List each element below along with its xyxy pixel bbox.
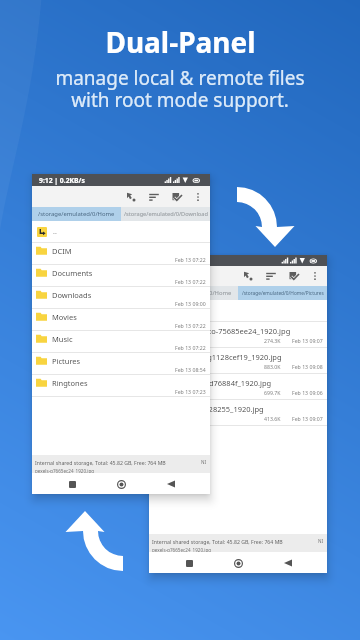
button[interactable]: Sort <box>263 268 279 284</box>
button[interactable]: /storage/emulated/0/Home/Pictures <box>238 286 327 300</box>
staticText: Ringtones <box>52 378 88 388</box>
staticText: Feb 13 09:07 <box>292 415 323 422</box>
button[interactable]: /storage/emulated/0/Home <box>32 207 121 221</box>
staticText: Documents <box>52 268 93 278</box>
button[interactable]: Paste <box>123 189 139 205</box>
staticText: Feb 13 07:22 <box>175 278 206 285</box>
button[interactable]: DCIM <box>32 243 210 265</box>
button[interactable]: Ringtones <box>32 375 210 397</box>
staticText: Feb 13 07:22 <box>175 322 206 329</box>
button[interactable]: Downloads <box>32 287 210 309</box>
staticText: Movies <box>52 312 77 322</box>
staticText: 413.6K <box>264 415 281 422</box>
button[interactable]: /storage/emulated/0/Home <box>149 286 238 300</box>
staticText: 699.7K <box>264 389 281 396</box>
button[interactable]: pexels-photo-75685ee24_1920.jpg <box>149 322 327 348</box>
staticText: Dual-Panel <box>105 23 256 61</box>
staticText: pexels-g7665ec24_1920.jpg <box>35 468 95 473</box>
staticText: NI <box>201 459 207 465</box>
button[interactable]: Select all <box>286 268 302 284</box>
staticText: Downloads <box>52 290 92 300</box>
button[interactable]: /storage/emulated/0/Download <box>121 207 210 221</box>
button[interactable]: Select all <box>169 189 185 205</box>
staticText: 883.0K <box>264 363 281 370</box>
staticText: manage local & remote files with root mo… <box>55 65 305 113</box>
button[interactable]: Home <box>228 553 248 573</box>
staticText: /storage/emulated/0/Download <box>124 210 208 218</box>
staticText: Feb 13 09:06 <box>292 389 323 396</box>
button[interactable]: wallpaper-g1128cef19_1920.jpg <box>149 348 327 374</box>
staticText: Pictures <box>52 356 81 366</box>
staticText: nature-ga2d76884f_1920.jpg <box>170 378 272 388</box>
staticText: wallpaper-g1128cef19_1920.jpg <box>170 352 282 362</box>
staticText: DCIM <box>52 246 72 256</box>
staticText: .. <box>170 306 174 316</box>
button[interactable]: bird-g2d4128255_1920.jpg <box>149 400 327 426</box>
button[interactable]: Recent apps <box>179 553 199 573</box>
button[interactable]: More options <box>307 268 323 284</box>
staticText: Feb 13 09:07 <box>292 337 323 344</box>
staticText: Feb 13 08:54 <box>175 366 206 373</box>
staticText: /storage/emulated/0/Home <box>155 289 232 297</box>
button[interactable]: Sort <box>146 189 162 205</box>
staticText: Feb 13 09:08 <box>292 363 323 370</box>
staticText: bird-g2d4128255_1920.jpg <box>170 404 264 414</box>
button[interactable]: Paste <box>240 268 256 284</box>
button[interactable]: Back <box>278 553 298 573</box>
staticText: /storage/emulated/0/Home/Pictures <box>242 290 324 297</box>
button[interactable]: Documents <box>32 265 210 287</box>
staticText: Feb 13 07:22 <box>175 256 206 263</box>
button[interactable]: .. <box>32 221 210 243</box>
staticText: pexels-photo-75685ee24_1920.jpg <box>170 326 291 336</box>
button[interactable]: Music <box>32 331 210 353</box>
staticText: Feb 13 09:00 <box>175 300 206 307</box>
staticText: NI <box>318 538 324 544</box>
button[interactable]: Back <box>161 474 181 494</box>
staticText: .. <box>53 227 57 237</box>
button[interactable]: Recent apps <box>62 474 82 494</box>
staticText: 9:12 | 0.2KB/s <box>39 176 85 185</box>
staticText: 274.3K <box>264 337 281 344</box>
staticText: Feb 13 07:22 <box>175 344 206 351</box>
staticText: Internal shared storage, Total: 45.82 GB… <box>35 459 166 466</box>
button[interactable]: Movies <box>32 309 210 331</box>
button[interactable]: .. <box>149 300 327 322</box>
staticText: pexels-g7665ec24_1920.jpg <box>152 547 212 552</box>
staticText: Feb 13 07:23 <box>175 388 206 395</box>
button[interactable]: nature-ga2d76884f_1920.jpg <box>149 374 327 400</box>
button[interactable]: More options <box>190 189 206 205</box>
button[interactable]: Pictures <box>32 353 210 375</box>
button[interactable]: Home <box>111 474 131 494</box>
staticText: /storage/emulated/0/Home <box>38 210 115 218</box>
staticText: Music <box>52 334 73 344</box>
staticText: Internal shared storage, Total: 45.82 GB… <box>152 538 283 545</box>
